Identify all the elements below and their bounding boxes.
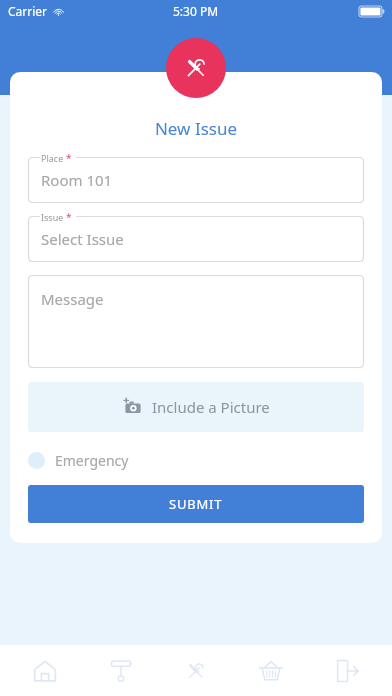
staticText: New Issue (10, 117, 382, 140)
button[interactable]: SUBMIT (28, 485, 364, 523)
button[interactable]: Include a Picture (28, 382, 364, 432)
staticText: Message (41, 289, 104, 309)
button[interactable]: Painting (91, 645, 151, 696)
staticText: Include a Picture (152, 397, 270, 417)
button[interactable]: Emergency (28, 446, 129, 474)
staticText: Carrier (8, 3, 48, 19)
button[interactable]: Place (28, 157, 364, 203)
staticText: * (66, 210, 72, 224)
staticText: Place (41, 152, 64, 164)
staticText: Room 101 (41, 170, 113, 190)
button[interactable]: Message (28, 275, 364, 368)
staticText: 5:30 PM (173, 3, 219, 19)
staticText: Issue (41, 211, 64, 223)
button[interactable]: Cleaning (241, 645, 301, 696)
staticText: SUBMIT (169, 495, 223, 513)
staticText: Emergency (55, 451, 129, 470)
button[interactable]: Maintenance (166, 645, 226, 696)
button[interactable]: Log out (317, 645, 377, 696)
button[interactable]: Issue (28, 216, 364, 262)
staticText: Select Issue (41, 229, 124, 249)
staticText: * (66, 151, 72, 165)
button[interactable]: Maintenance tools (166, 38, 226, 98)
button[interactable]: Home (15, 645, 75, 696)
